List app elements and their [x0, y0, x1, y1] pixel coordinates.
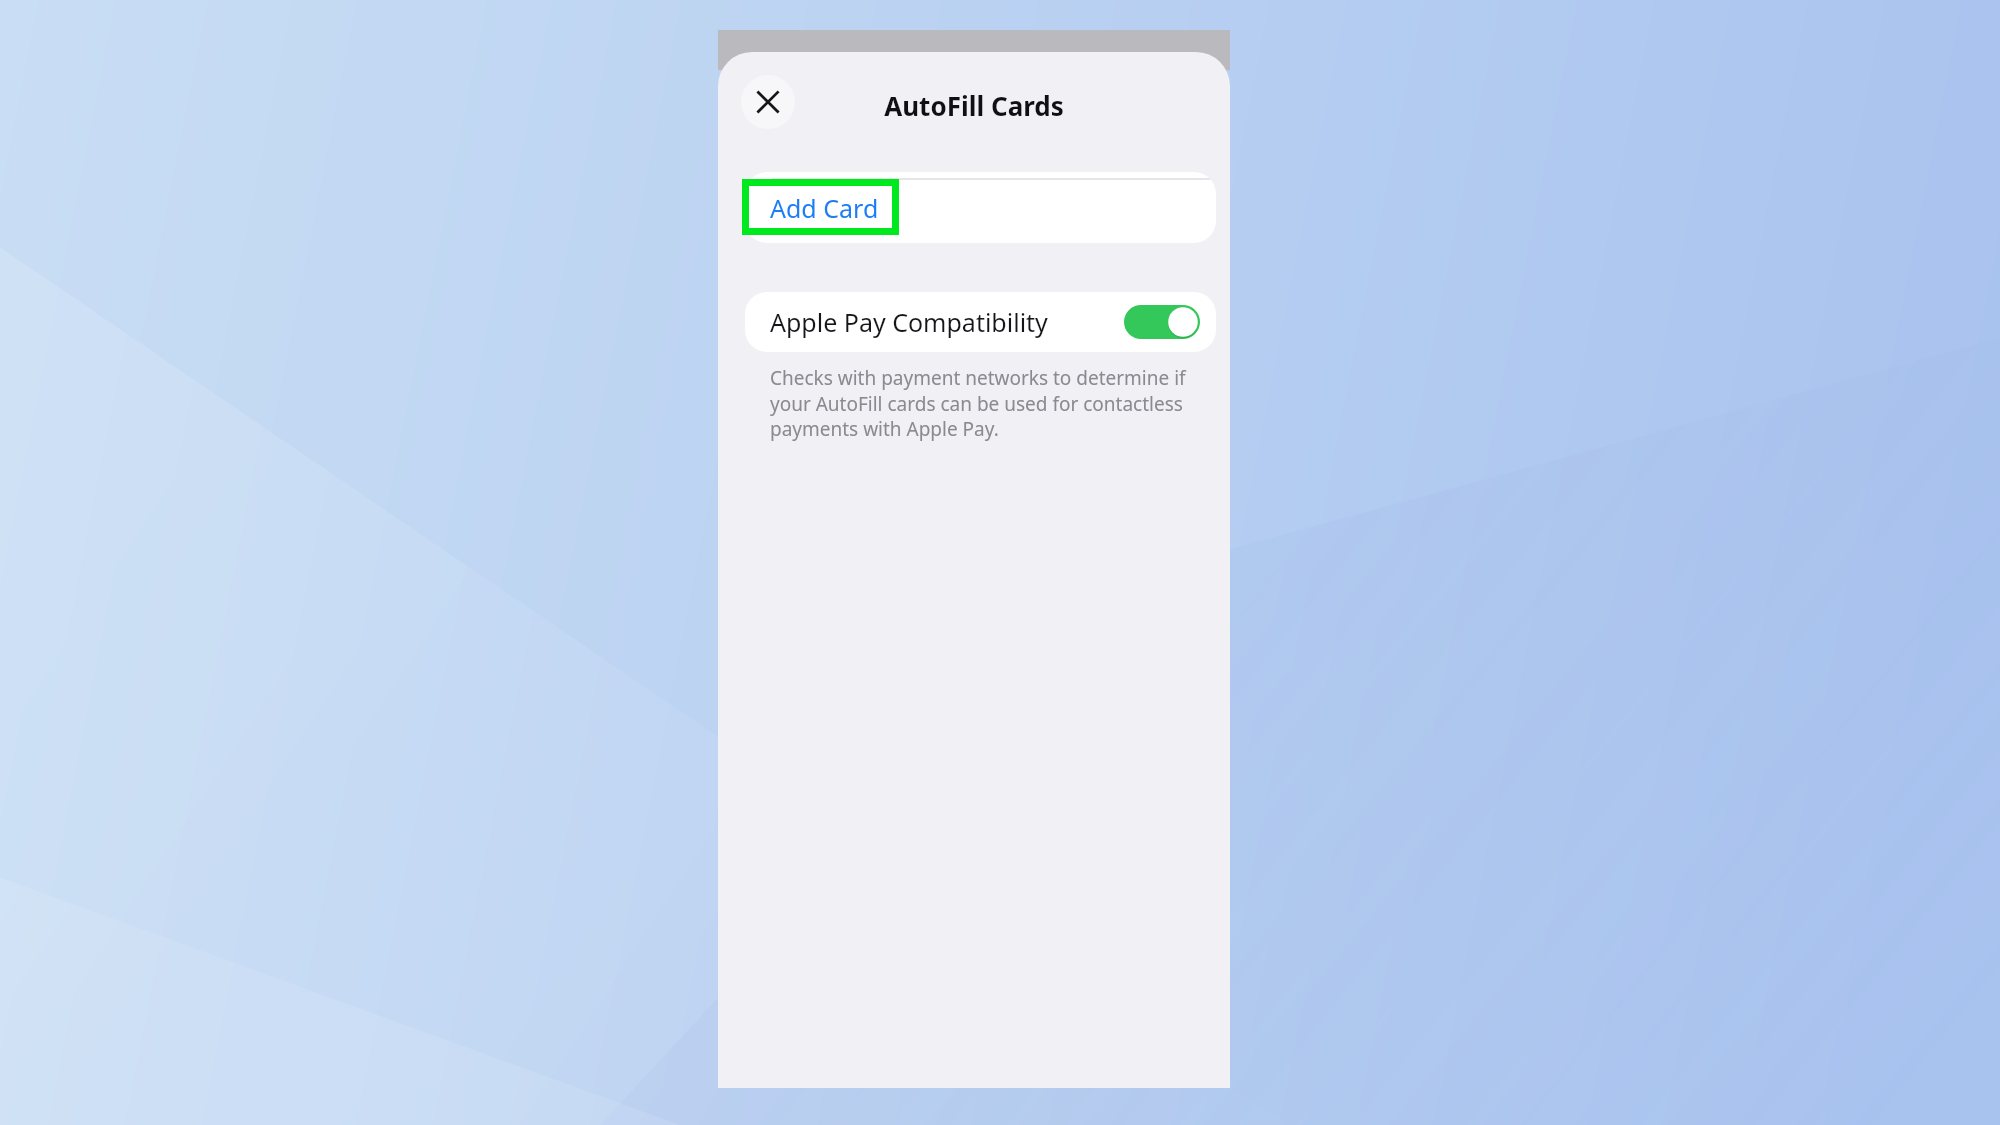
- staticText: Checks with payment networks to determin…: [770, 365, 1190, 441]
- staticText: AutoFill Cards: [884, 88, 1064, 123]
- staticText: Add Card: [770, 191, 879, 225]
- button[interactable]: Add Card: [745, 172, 1216, 243]
- staticText: Apple Pay Compatibility: [770, 305, 1048, 339]
- button[interactable]: Apple Pay Compatibility toggle, on: [1124, 305, 1200, 339]
- button[interactable]: Close: [741, 75, 795, 129]
